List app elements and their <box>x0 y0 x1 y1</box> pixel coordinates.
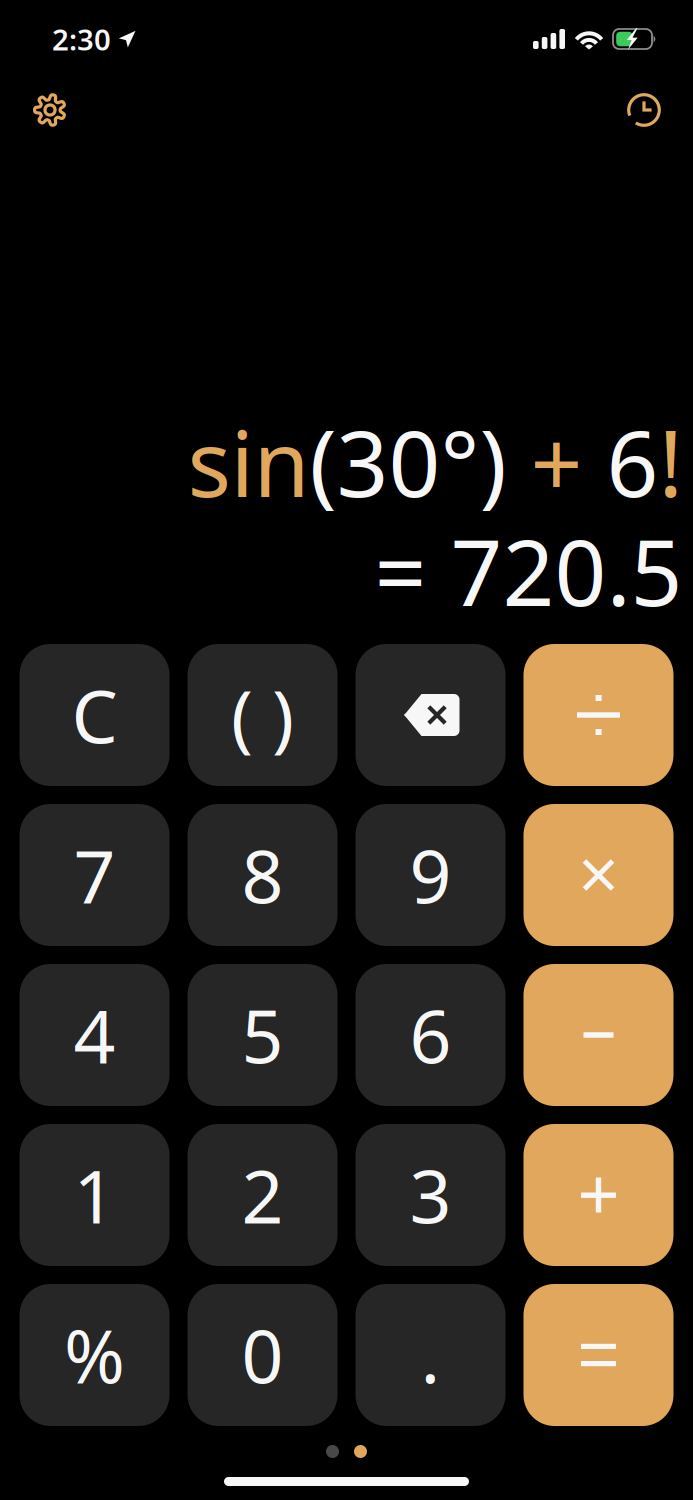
button[interactable]: 6 <box>355 964 505 1106</box>
staticText: 4 <box>73 986 115 1084</box>
button[interactable]: Clear <box>19 644 169 786</box>
button[interactable]: 9 <box>355 804 505 946</box>
staticText: ( ) <box>231 666 294 764</box>
staticText: % <box>64 1306 125 1404</box>
button[interactable]: 0 <box>187 1284 337 1426</box>
staticText: sin <box>187 402 309 522</box>
staticText: ! <box>658 402 682 522</box>
button[interactable]: 3 <box>355 1124 505 1266</box>
staticText: 5 <box>241 986 283 1084</box>
button[interactable]: Decimal point <box>355 1284 505 1426</box>
staticText: 2 <box>241 1146 283 1244</box>
staticText: C <box>71 666 117 764</box>
button[interactable]: Settings <box>26 86 74 134</box>
button[interactable]: Subtract <box>523 964 673 1106</box>
staticText: 9 <box>409 826 451 924</box>
staticText: + <box>506 402 606 522</box>
staticText: 2:30 <box>52 19 111 58</box>
staticText: 7 <box>73 826 115 924</box>
button[interactable]: 8 <box>187 804 337 946</box>
button[interactable]: Add <box>523 1124 673 1266</box>
button[interactable]: 1 <box>19 1124 169 1266</box>
button[interactable]: 2 <box>187 1124 337 1266</box>
staticText: 8 <box>241 826 283 924</box>
staticText: 1 <box>73 1146 115 1244</box>
button[interactable]: Divide <box>523 644 673 786</box>
button[interactable]: 7 <box>19 804 169 946</box>
staticText: . <box>420 1306 440 1404</box>
staticText: = 720.5 <box>374 511 682 631</box>
staticText: 0 <box>241 1306 283 1404</box>
button[interactable]: Multiply <box>523 804 673 946</box>
staticText: (30°) <box>309 402 506 522</box>
staticText: 6 <box>606 402 658 522</box>
staticText: 6 <box>409 986 451 1084</box>
button[interactable]: Percent <box>19 1284 169 1426</box>
button[interactable]: 5 <box>187 964 337 1106</box>
button[interactable]: Delete <box>355 644 505 786</box>
button[interactable]: Parentheses <box>187 644 337 786</box>
button[interactable]: Equals <box>523 1284 673 1426</box>
button[interactable]: 4 <box>19 964 169 1106</box>
staticText: 3 <box>409 1146 451 1244</box>
button[interactable]: History <box>620 86 668 134</box>
